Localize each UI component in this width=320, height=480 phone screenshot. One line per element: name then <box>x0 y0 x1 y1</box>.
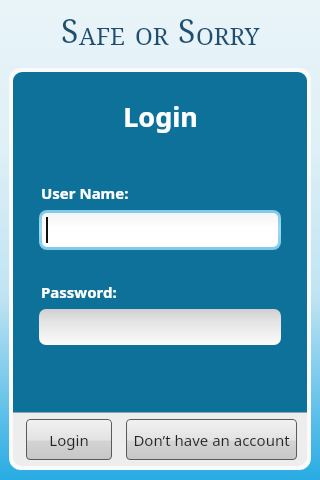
button[interactable]: Don’t have an account <box>126 419 297 460</box>
staticText: AFE <box>79 19 126 52</box>
button[interactable]: Login <box>26 419 112 460</box>
staticText: ORRY <box>196 19 260 52</box>
staticText: Login <box>49 430 89 450</box>
button[interactable]: Password field <box>39 309 281 345</box>
staticText: Don’t have an account <box>133 430 290 450</box>
staticText: S <box>61 9 79 53</box>
staticText: S <box>178 9 196 53</box>
staticText: Password: <box>41 282 117 302</box>
button[interactable]: User name field <box>39 210 281 250</box>
staticText: OR <box>135 19 169 52</box>
staticText: Login <box>123 98 198 135</box>
staticText: User Name: <box>41 183 129 203</box>
